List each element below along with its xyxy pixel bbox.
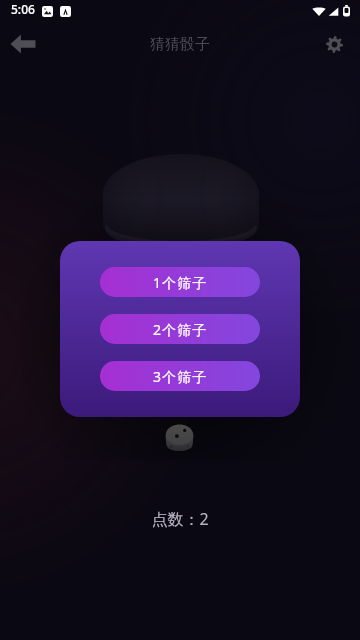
staticText: 1个筛子 — [153, 273, 208, 292]
button[interactable]: Back — [1, 22, 45, 66]
button[interactable]: 2个筛子 — [100, 314, 260, 344]
staticText: 点数：2 — [0, 508, 360, 530]
staticText: 猜猜骰子 — [150, 35, 210, 54]
button[interactable]: Settings — [312, 22, 356, 66]
button[interactable]: 3个筛子 — [100, 361, 260, 391]
staticText: 2个筛子 — [153, 320, 208, 339]
staticText: 3个筛子 — [153, 367, 208, 386]
button[interactable]: 1个筛子 — [100, 267, 260, 297]
staticText: 5:06 — [11, 1, 35, 17]
